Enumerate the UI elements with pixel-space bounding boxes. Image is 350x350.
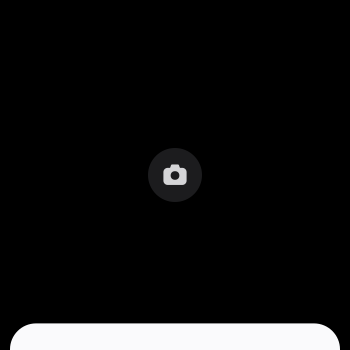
- button[interactable]: Add photo: [148, 148, 202, 202]
